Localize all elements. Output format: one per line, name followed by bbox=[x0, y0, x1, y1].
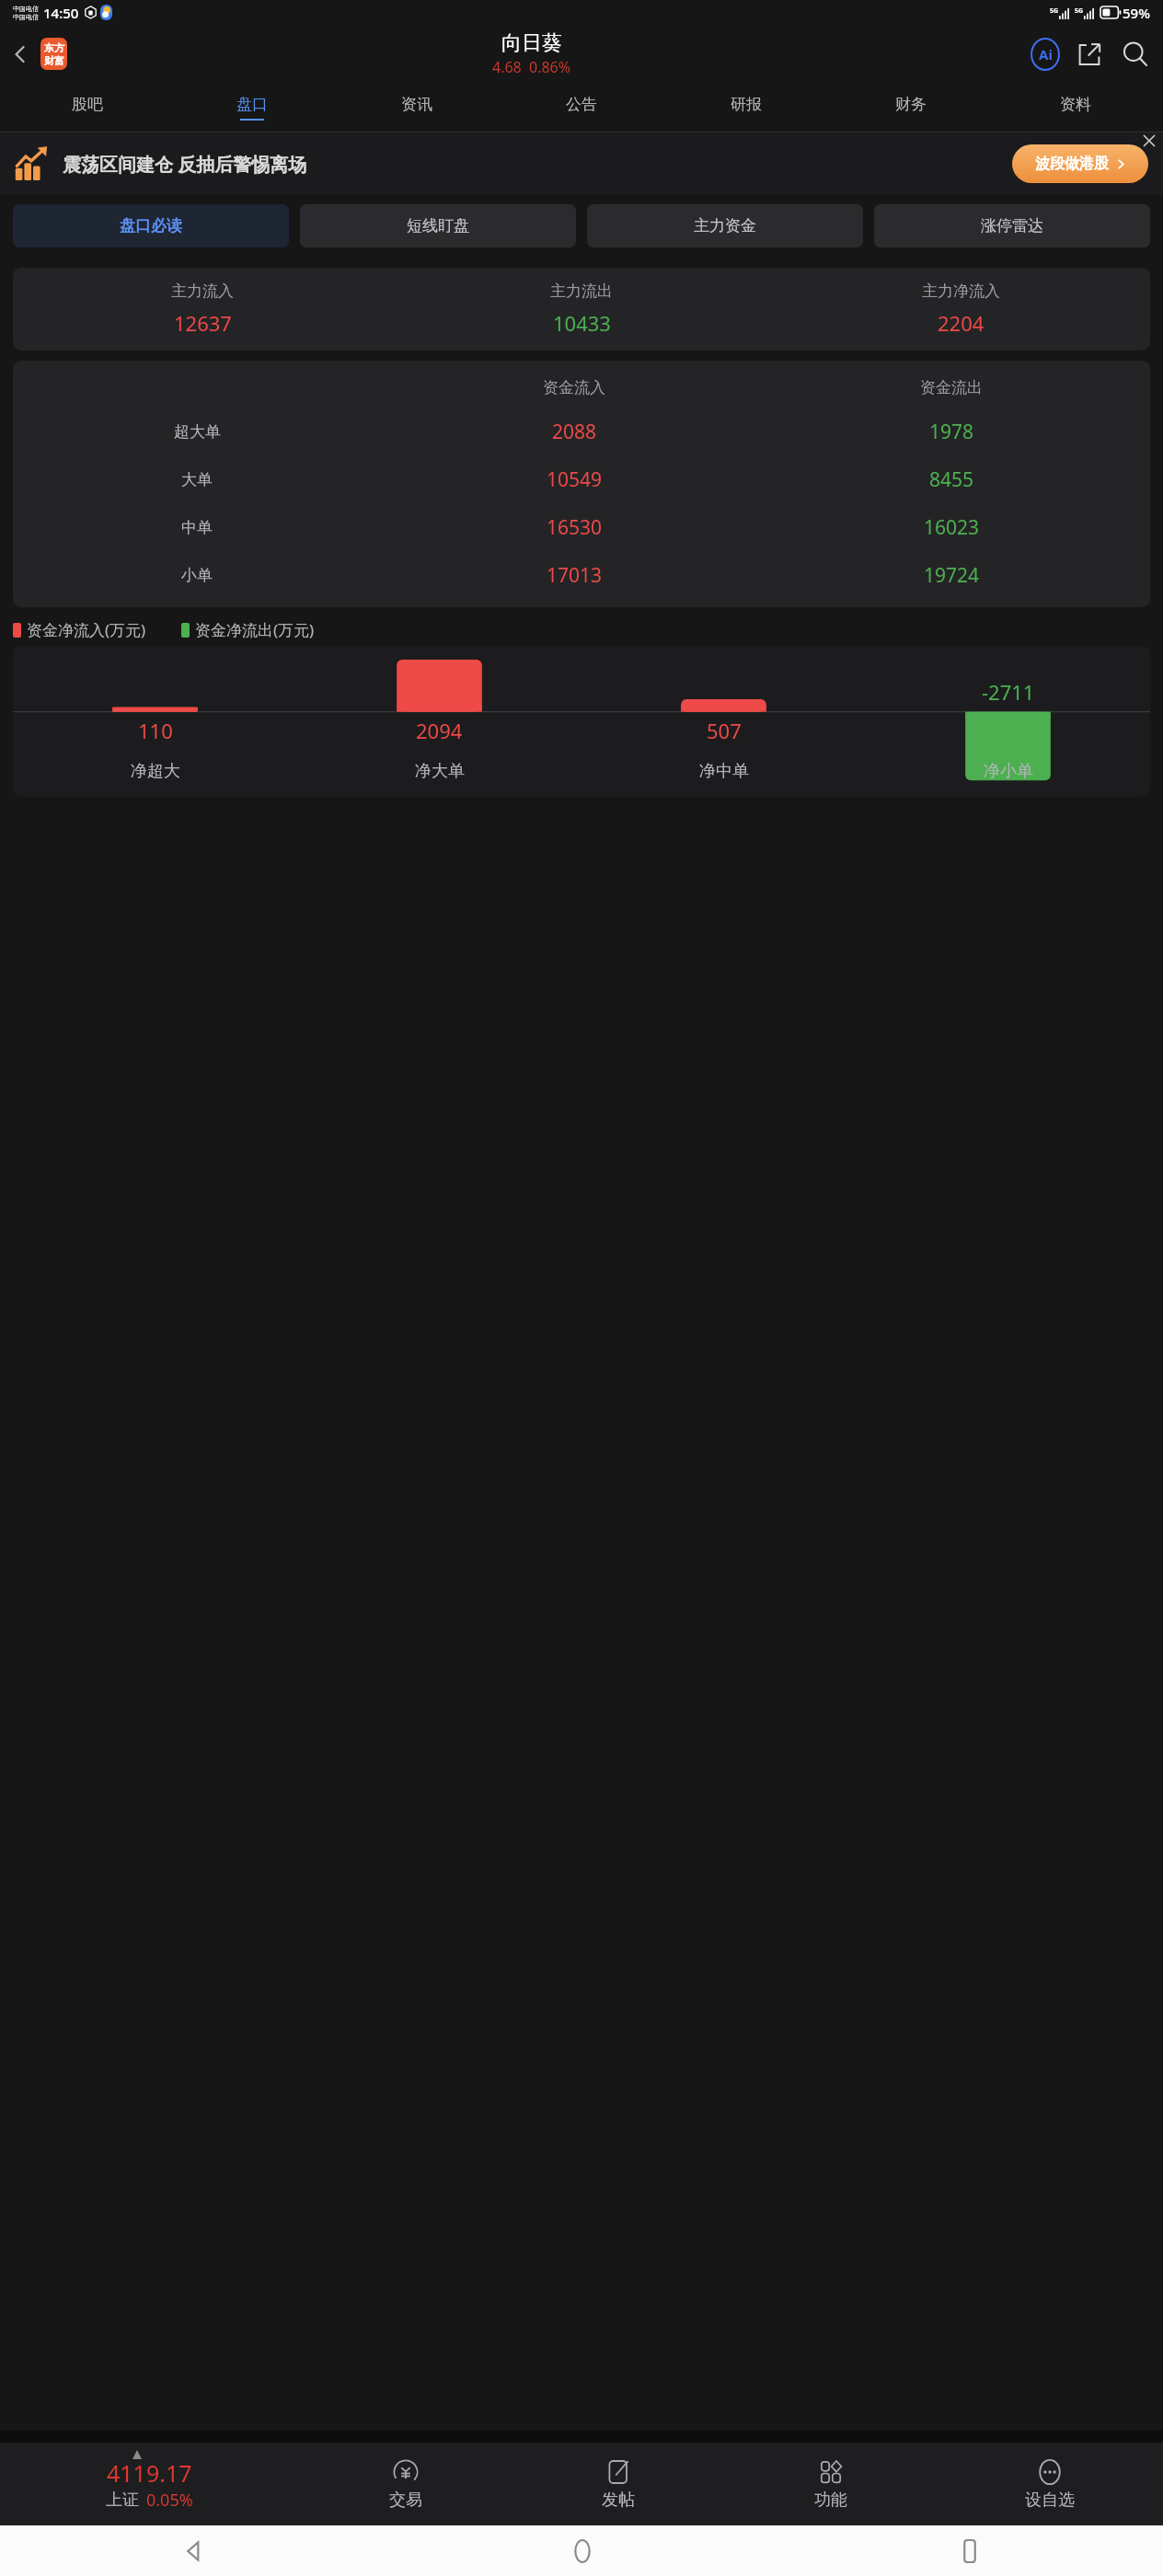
staticText: 资金净流出(万元) bbox=[195, 619, 315, 640]
staticText: 功能 bbox=[814, 2490, 847, 2511]
staticText: 涨停雷达 bbox=[981, 216, 1043, 236]
staticText: 中国电信 bbox=[13, 5, 39, 13]
button[interactable]: Recents bbox=[776, 2525, 1163, 2576]
staticText: 波段做港股 bbox=[1035, 155, 1109, 173]
staticText: 10433 bbox=[553, 309, 611, 337]
button[interactable]: AI bbox=[1023, 32, 1067, 76]
staticText: 0.86% bbox=[529, 57, 571, 77]
button[interactable]: 盘口 bbox=[169, 83, 334, 132]
staticText: 资料 bbox=[1060, 95, 1091, 114]
staticText: 资金净流入(万元) bbox=[27, 619, 146, 640]
staticText: 小单 bbox=[181, 566, 213, 585]
staticText: 中国电信 bbox=[13, 13, 39, 21]
button[interactable]: 研报 bbox=[663, 83, 828, 132]
staticText: 盘口必读 bbox=[120, 216, 182, 236]
staticText: 14:50 bbox=[43, 4, 79, 22]
staticText: 东方 bbox=[44, 41, 64, 54]
button[interactable]: Share bbox=[1067, 32, 1111, 76]
button[interactable]: 主力流入 bbox=[13, 268, 1150, 351]
staticText: 大单 bbox=[181, 470, 213, 489]
button[interactable]: 资讯 bbox=[334, 83, 499, 132]
staticText: 2094 bbox=[416, 717, 463, 744]
button[interactable]: 发帖 bbox=[512, 2443, 724, 2525]
button[interactable]: 盘口必读 bbox=[13, 204, 289, 247]
staticText: 资金流出 bbox=[920, 378, 983, 397]
staticText: 超大单 bbox=[174, 422, 221, 442]
staticText: 上证 bbox=[106, 2490, 139, 2511]
button[interactable]: 财务 bbox=[828, 83, 993, 132]
staticText: 0.05% bbox=[146, 2489, 193, 2512]
button[interactable]: Back bbox=[0, 34, 40, 75]
staticText: 12637 bbox=[174, 309, 232, 337]
staticText: 5G bbox=[1050, 6, 1059, 16]
staticText: 净中单 bbox=[699, 761, 749, 782]
staticText: 2204 bbox=[938, 309, 985, 337]
staticText: 震荡区间建仓 反抽后警惕离场 bbox=[63, 152, 307, 177]
staticText: 发帖 bbox=[602, 2490, 635, 2511]
button[interactable]: 公告 bbox=[499, 83, 663, 132]
staticText: 主力流入 bbox=[171, 282, 234, 301]
staticText: 19724 bbox=[924, 562, 980, 589]
staticText: Ai bbox=[1039, 45, 1053, 63]
button[interactable]: 资料 bbox=[993, 83, 1157, 132]
staticText: 主力资金 bbox=[694, 216, 756, 236]
staticText: 中单 bbox=[181, 518, 213, 537]
staticText: 110 bbox=[138, 717, 173, 744]
staticText: 研报 bbox=[731, 95, 762, 114]
staticText: 507 bbox=[707, 717, 742, 744]
staticText: 资金流入 bbox=[543, 378, 605, 397]
button[interactable]: Search bbox=[1111, 30, 1159, 78]
staticText: 16023 bbox=[924, 514, 980, 541]
staticText: 2088 bbox=[552, 419, 597, 445]
staticText: 16530 bbox=[547, 514, 603, 541]
staticText: 5G bbox=[1075, 6, 1084, 16]
button[interactable]: 交易 bbox=[299, 2443, 512, 2525]
staticText: 设自选 bbox=[1025, 2490, 1075, 2511]
staticText: 财务 bbox=[895, 95, 927, 114]
button[interactable]: 股吧 bbox=[6, 83, 169, 132]
staticText: 向日葵 bbox=[501, 30, 562, 56]
button[interactable]: 功能 bbox=[724, 2443, 937, 2525]
staticText: 主力流出 bbox=[550, 282, 613, 301]
staticText: 1978 bbox=[929, 419, 974, 445]
staticText: 10549 bbox=[547, 466, 603, 493]
staticText: 8455 bbox=[929, 466, 974, 493]
button[interactable]: 设自选 bbox=[937, 2443, 1163, 2525]
staticText: -2711 bbox=[982, 678, 1035, 706]
button[interactable]: 东方财富 bbox=[40, 38, 67, 70]
staticText: 交易 bbox=[389, 2490, 422, 2511]
staticText: 17013 bbox=[547, 562, 603, 589]
staticText: 净超大 bbox=[131, 761, 180, 782]
button[interactable]: Home bbox=[388, 2525, 776, 2576]
staticText: 主力净流入 bbox=[922, 282, 1000, 301]
button[interactable]: 短线盯盘 bbox=[300, 204, 576, 247]
button[interactable]: 涨停雷达 bbox=[874, 204, 1150, 247]
staticText: 短线盯盘 bbox=[407, 216, 469, 236]
staticText: 净小单 bbox=[984, 761, 1033, 782]
staticText: 财富 bbox=[44, 54, 64, 67]
staticText: 股吧 bbox=[72, 95, 103, 114]
button[interactable]: 资金流入 bbox=[13, 361, 1150, 607]
staticText: 盘口 bbox=[236, 95, 268, 114]
staticText: 净大单 bbox=[415, 761, 465, 782]
staticText: 资讯 bbox=[401, 95, 432, 114]
button[interactable]: 110 bbox=[13, 646, 1150, 797]
button[interactable]: Close ad bbox=[1135, 127, 1163, 155]
staticText: 公告 bbox=[566, 95, 597, 114]
staticText: 4.68 bbox=[492, 57, 522, 77]
staticText: 59% bbox=[1123, 4, 1150, 22]
button[interactable]: 波段做港股 bbox=[1012, 144, 1148, 183]
button[interactable]: 主力资金 bbox=[587, 204, 863, 247]
staticText: 4119.17 bbox=[107, 2457, 192, 2489]
button[interactable]: 4119.17 bbox=[0, 2443, 299, 2525]
button[interactable]: Back bbox=[0, 2525, 388, 2576]
